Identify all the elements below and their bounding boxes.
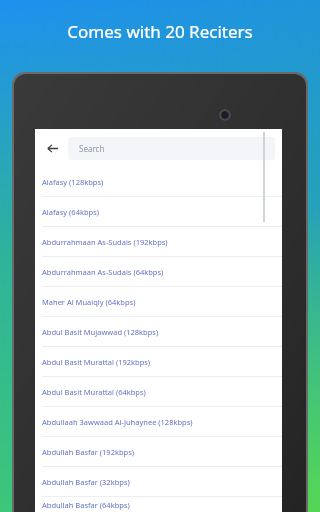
button[interactable]: Abdullah Basfar (192kbps) (35, 437, 282, 466)
button[interactable]: Abdul Basit Murattal (192kbps) (35, 347, 282, 376)
button[interactable]: Abdullah Basfar (64kbps) (35, 497, 282, 512)
staticText: Abdullah Basfar (64kbps) (42, 500, 130, 510)
button[interactable]: Search (68, 137, 275, 160)
staticText: Search (79, 143, 105, 154)
button[interactable]: Abdurrahmaan As-Sudais (192kbps) (35, 227, 282, 256)
button[interactable]: Maher Al Muaiqly (64kbps) (35, 287, 282, 316)
button[interactable]: Abdullaah 3awwaad Al-Juhaynee (128kbps) (35, 407, 282, 436)
button[interactable]: Back (42, 138, 62, 158)
staticText: Maher Al Muaiqly (64kbps) (42, 297, 136, 307)
staticText: Comes with 20 Reciters (67, 20, 253, 43)
button[interactable]: Abdurrahmaan As-Sudais (64kbps) (35, 257, 282, 286)
button[interactable]: Abdul Basit Mujawwad (128kbps) (35, 317, 282, 346)
button[interactable]: Alafasy (128kbps) (35, 167, 282, 196)
staticText: Abdul Basit Mujawwad (128kbps) (42, 327, 159, 337)
button[interactable]: Abdul Basit Murattal (64kbps) (35, 377, 282, 406)
staticText: Alafasy (128kbps) (42, 177, 104, 187)
staticText: Abdullaah 3awwaad Al-Juhaynee (128kbps) (42, 417, 193, 427)
staticText: Abdul Basit Murattal (192kbps) (42, 357, 151, 367)
staticText: Abdul Basit Murattal (64kbps) (42, 387, 146, 397)
button[interactable]: Abdullah Basfar (32kbps) (35, 467, 282, 496)
staticText: Abdullah Basfar (32kbps) (42, 477, 130, 487)
staticText: Abdullah Basfar (192kbps) (42, 447, 135, 457)
staticText: Abdurrahmaan As-Sudais (192kbps) (42, 237, 168, 247)
staticText: Alafasy (64kbps) (42, 207, 99, 217)
button[interactable]: Alafasy (64kbps) (35, 197, 282, 226)
staticText: Abdurrahmaan As-Sudais (64kbps) (42, 267, 164, 277)
